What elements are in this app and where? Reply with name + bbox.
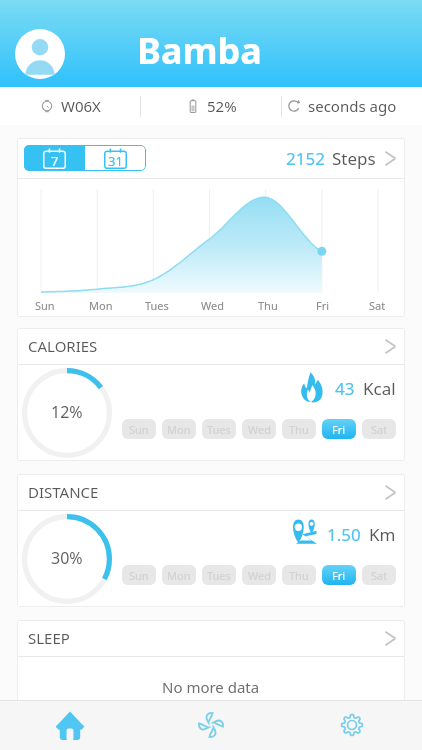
button[interactable]: W06X <box>0 87 140 125</box>
button[interactable]: Fri <box>322 419 356 439</box>
staticText: 1.50 <box>327 523 361 546</box>
button[interactable]: Sat <box>362 419 396 439</box>
staticText: 7 <box>51 152 59 170</box>
staticText: 12% <box>51 401 83 423</box>
staticText: seconds ago <box>308 96 397 116</box>
staticText: Sun <box>35 298 55 313</box>
staticText: 2152 <box>286 147 325 170</box>
staticText: Bamba <box>137 26 262 75</box>
staticText: Km <box>369 523 396 546</box>
staticText: Mon <box>89 298 113 313</box>
button[interactable]: DISTANCE <box>28 474 396 510</box>
staticText: Kcal <box>363 377 396 400</box>
button[interactable]: Sun <box>122 565 156 585</box>
button[interactable]: Thu <box>282 565 316 585</box>
button[interactable]: SLEEP <box>28 620 396 656</box>
staticText: Mon <box>167 422 191 437</box>
button[interactable]: Mon <box>162 565 196 585</box>
staticText: 52% <box>207 96 237 116</box>
button[interactable]: Tues <box>202 419 236 439</box>
staticText: Thu <box>289 422 309 437</box>
staticText: 31 <box>108 152 123 170</box>
button[interactable]: Settings <box>281 700 422 750</box>
staticText: Fri <box>316 298 330 313</box>
staticText: Mon <box>167 568 191 583</box>
staticText: W06X <box>61 96 101 116</box>
staticText: Sat <box>371 568 388 583</box>
staticText: Sun <box>129 422 149 437</box>
button[interactable]: Profile <box>15 29 65 79</box>
button[interactable]: Activity <box>140 700 281 750</box>
staticText: DISTANCE <box>28 482 99 502</box>
staticText: No more data <box>162 677 260 697</box>
staticText: Fri <box>332 568 346 583</box>
button[interactable]: Mon <box>162 419 196 439</box>
button[interactable]: 52% <box>141 87 281 125</box>
staticText: Wed <box>248 422 271 437</box>
staticText: Tues <box>207 568 231 583</box>
staticText: Steps <box>332 147 376 170</box>
button[interactable]: Thu <box>282 419 316 439</box>
button[interactable]: Tues <box>202 565 236 585</box>
button[interactable]: Month view <box>85 145 146 171</box>
button[interactable]: Sun <box>122 419 156 439</box>
staticText: Tues <box>207 422 231 437</box>
staticText: Fri <box>332 422 346 437</box>
button[interactable]: Wed <box>242 565 276 585</box>
staticText: CALORIES <box>28 336 98 356</box>
button[interactable]: Week view <box>24 145 85 171</box>
button[interactable]: Home <box>0 700 140 750</box>
staticText: 43 <box>335 377 355 400</box>
staticText: 30% <box>51 547 83 569</box>
button[interactable]: Sat <box>362 565 396 585</box>
staticText: Wed <box>248 568 271 583</box>
staticText: Thu <box>258 298 278 313</box>
button[interactable]: CALORIES <box>28 328 396 364</box>
staticText: Sat <box>371 422 388 437</box>
staticText: Tues <box>145 298 169 313</box>
staticText: SLEEP <box>28 628 70 648</box>
staticText: Sun <box>129 568 149 583</box>
staticText: Thu <box>289 568 309 583</box>
button[interactable]: Fri <box>322 565 356 585</box>
button[interactable]: Wed <box>242 419 276 439</box>
button[interactable]: seconds ago <box>282 87 422 125</box>
staticText: Sat <box>369 298 386 313</box>
staticText: Wed <box>201 298 224 313</box>
